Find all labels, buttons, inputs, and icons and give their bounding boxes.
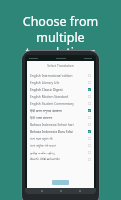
button[interactable]: OK [52, 180, 69, 185]
button[interactable]: বাংলা সহজ অনুবাদ পাঠ [27, 135, 94, 142]
button[interactable]: English Literary Life [27, 79, 94, 86]
staticText: हिंदी पाठ्य संस्करण [30, 116, 86, 120]
button[interactable]: Bahasa Indonesia Baru Edisi [27, 128, 94, 135]
staticText: Bahasa Indonesia Baru Edisi [30, 130, 86, 134]
staticText: తెలుగు సరళ అనువాదం [30, 157, 86, 162]
staticText: English International edition [30, 74, 86, 78]
staticText: Bahasa Indonesia Sehari hari [30, 123, 86, 127]
button[interactable]: Back [39, 188, 44, 194]
button[interactable]: English Student Commentary [27, 100, 94, 107]
staticText: বাংলা সহজ অনুবাদ পাঠ [30, 137, 86, 141]
staticText: বাংলা আধুনিক পাঠ সংস্করণ [30, 144, 86, 148]
staticText: தமிழ் எளிய பதிப்பு [30, 151, 86, 155]
staticText: Choose from multiple translations [3, 13, 118, 60]
staticText: English Modern Standard [30, 95, 86, 99]
staticText: English Student Commentary [30, 102, 86, 106]
button[interactable]: Recents [77, 188, 82, 194]
button[interactable]: తెలుగు సరళ అనువాదం [27, 156, 94, 163]
button[interactable]: हिंदी सरल अनुवाद संस्करण [27, 107, 94, 114]
button[interactable]: English International edition [27, 72, 94, 79]
button[interactable]: தமிழ் எளிய பதிப்பு [27, 149, 94, 156]
staticText: English Literary Life [30, 81, 86, 85]
staticText: English Classic Digest [30, 88, 86, 92]
staticText: Select Translation [27, 64, 94, 68]
button[interactable]: English Classic Digest [27, 86, 94, 93]
button[interactable]: Home [58, 188, 63, 194]
button[interactable]: Bahasa Indonesia Sehari hari [27, 121, 94, 128]
button[interactable]: English Modern Standard [27, 93, 94, 100]
staticText: हिंदी सरल अनुवाद संस्करण [30, 109, 86, 113]
button[interactable]: हिंदी पाठ्य संस्करण [27, 114, 94, 121]
button[interactable]: বাংলা আধুনিক পাঠ সংস্করণ [27, 142, 94, 149]
